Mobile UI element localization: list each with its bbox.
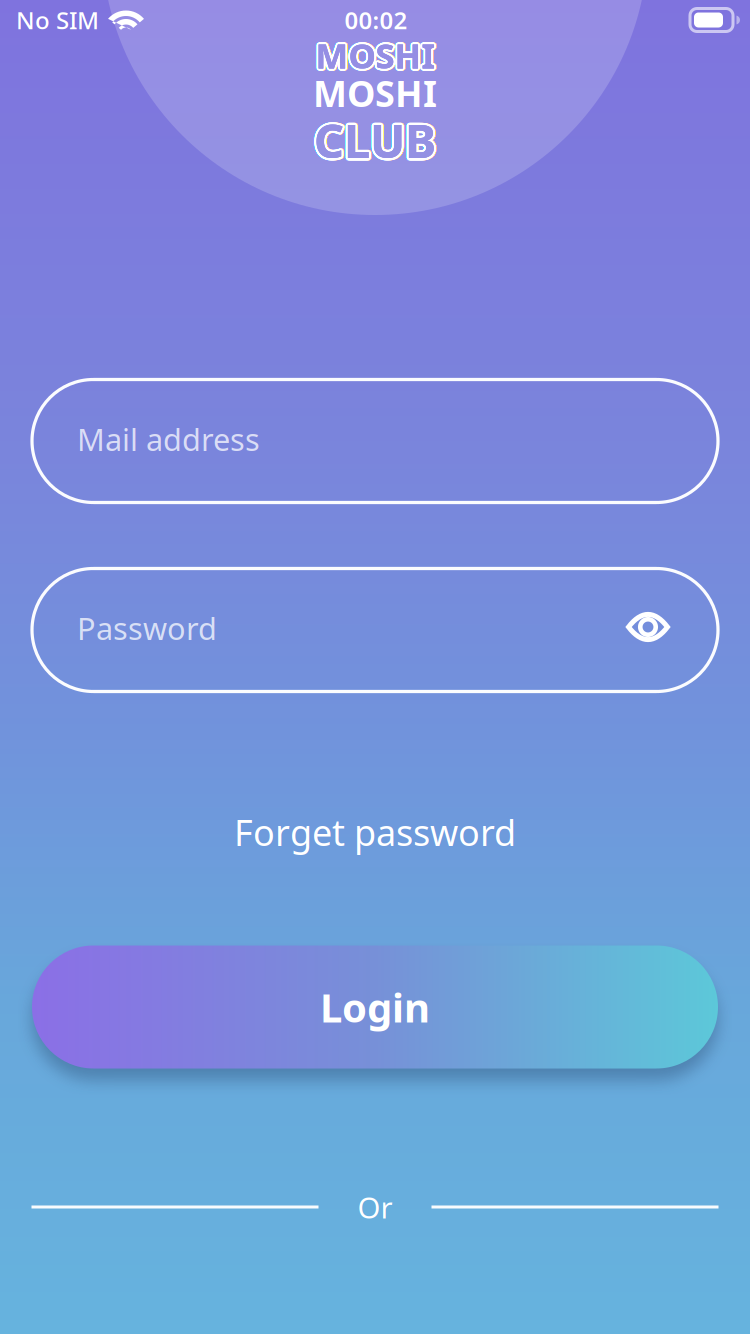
staticText: CLUB (316, 111, 438, 173)
staticText: CLUB (315, 107, 437, 169)
staticText: CLUB (313, 111, 435, 173)
staticText: MOSHI (315, 32, 434, 78)
staticText: CLUB (313, 111, 435, 173)
staticText: CLUB (313, 107, 435, 169)
staticText: CLUB (316, 110, 438, 172)
staticText: MOSHI (317, 33, 436, 79)
staticText: MOSHI (315, 32, 434, 78)
staticText: MOSHI (314, 30, 433, 76)
staticText: MOSHI (315, 30, 434, 76)
staticText: CLUB (315, 107, 437, 169)
staticText: MOSHI (314, 33, 433, 79)
staticText: MOSHI (313, 33, 432, 79)
staticText: CLUB (316, 107, 438, 169)
staticText: MOSHI (317, 31, 436, 77)
staticText: CLUB (312, 109, 434, 171)
staticText: CLUB (316, 110, 438, 172)
staticText: MOSHI (313, 32, 432, 78)
button[interactable]: Login (32, 945, 718, 1068)
staticText: No SIM (16, 4, 99, 36)
staticText: MOSHI (314, 30, 433, 76)
staticText: MOSHI (313, 33, 432, 79)
staticText: CLUB (316, 109, 438, 171)
staticText: CLUB (314, 107, 436, 169)
staticText: MOSHI (314, 33, 433, 79)
staticText: MOSHI (315, 30, 434, 76)
staticText: MOSHI (315, 34, 434, 80)
staticText: MOSHI (317, 30, 436, 76)
staticText: MOSHI (313, 31, 432, 77)
staticText: Login (320, 980, 430, 1033)
staticText: CLUB (312, 108, 434, 170)
staticText: MOSHI (315, 30, 434, 76)
staticText: MOSHI (317, 33, 436, 79)
staticText: MOSHI (313, 69, 437, 117)
staticText: CLUB (316, 108, 438, 170)
staticText: MOSHI (317, 31, 436, 77)
staticText: Mail address (77, 419, 260, 459)
staticText: CLUB (314, 111, 436, 173)
staticText: CLUB (312, 109, 434, 171)
staticText: CLUB (316, 107, 438, 169)
staticText: MOSHI (318, 32, 437, 78)
staticText: CLUB (313, 107, 435, 169)
staticText: MOSHI (315, 30, 434, 76)
staticText: Password (77, 608, 217, 648)
staticText: CLUB (312, 111, 434, 173)
staticText: CLUB (315, 111, 437, 173)
staticText: MOSHI (315, 34, 434, 80)
staticText: MOSHI (317, 33, 436, 79)
staticText: MOSHI (315, 34, 434, 80)
staticText: MOSHI (316, 30, 435, 76)
staticText: CLUB (314, 111, 436, 173)
staticText: MOSHI (317, 33, 436, 79)
staticText: MOSHI (313, 31, 432, 77)
button[interactable]: Password (32, 568, 718, 691)
staticText: CLUB (312, 110, 434, 172)
staticText: CLUB (312, 108, 434, 170)
staticText: CLUB (312, 107, 434, 169)
staticText: CLUB (316, 109, 438, 171)
staticText: 00:02 (344, 4, 407, 36)
staticText: MOSHI (315, 34, 434, 80)
staticText: MOSHI (316, 34, 435, 80)
staticText: Forget password (234, 808, 516, 856)
staticText: MOSHI (313, 32, 432, 78)
staticText: CLUB (314, 109, 436, 171)
staticText: Or (357, 1187, 392, 1226)
button[interactable]: Show password (606, 585, 690, 669)
staticText: CLUB (316, 108, 438, 170)
staticText: CLUB (314, 107, 436, 169)
staticText: CLUB (312, 110, 434, 172)
staticText: CLUB (316, 111, 438, 173)
staticText: CLUB (314, 109, 436, 171)
staticText: MOSHI (318, 32, 437, 78)
staticText: MOSHI (316, 34, 435, 80)
staticText: CLUB (312, 111, 434, 173)
button[interactable]: Mail address (32, 379, 718, 502)
staticText: CLUB (314, 109, 436, 171)
staticText: MOSHI (316, 30, 435, 76)
button[interactable]: Forget password (205, 804, 545, 860)
staticText: CLUB (312, 107, 434, 169)
staticText: MOSHI (317, 30, 436, 76)
staticText: CLUB (315, 111, 437, 173)
staticText: MOSHI (315, 32, 434, 78)
